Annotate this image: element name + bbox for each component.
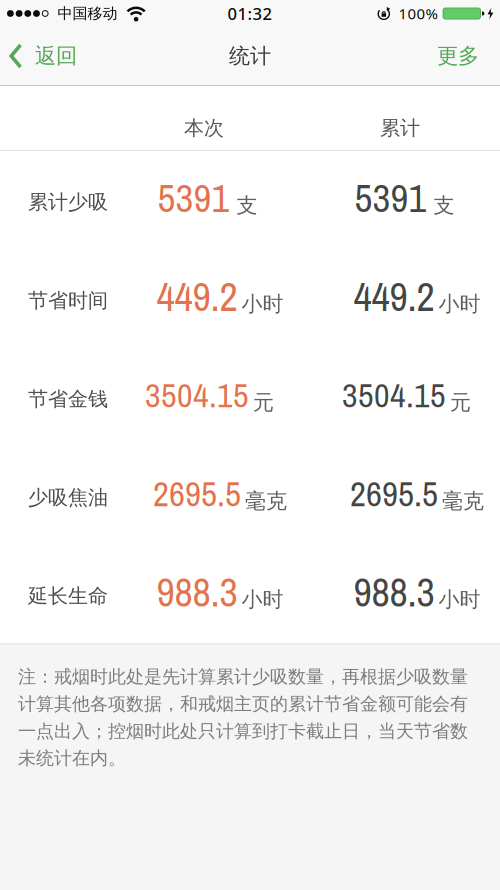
staticText: 小时 [241, 291, 283, 317]
staticText: 小时 [438, 586, 480, 613]
staticText: 988.3 [353, 565, 434, 619]
staticText: 2695.5 [350, 470, 438, 517]
staticText: 中国移动 [58, 4, 118, 23]
staticText: 支 [433, 192, 454, 219]
staticText: 3504.15 [145, 372, 249, 418]
button[interactable]: 更多 [437, 43, 500, 69]
staticText: 更多 [437, 43, 479, 69]
button[interactable]: 返回 [0, 43, 77, 69]
staticText: 988.3 [156, 565, 237, 619]
staticText: 本次 [184, 115, 224, 141]
staticText: 2695.5 [153, 470, 241, 517]
staticText: 小时 [438, 291, 480, 317]
staticText: 统计 [229, 43, 271, 69]
staticText: 449.2 [156, 270, 237, 323]
staticText: 元 [253, 389, 274, 416]
staticText: 毫克 [245, 488, 287, 514]
staticText: 累计 [380, 115, 420, 141]
staticText: 5391 [157, 172, 229, 224]
staticText: 延长生命 [28, 583, 108, 609]
staticText: 少吸焦油 [28, 485, 108, 510]
staticText: 5391 [354, 172, 426, 224]
staticText: 节省时间 [28, 288, 108, 313]
staticText: 3504.15 [342, 372, 446, 418]
staticText: 节省金钱 [28, 386, 108, 412]
staticText: 支 [236, 192, 257, 219]
staticText: 100% [399, 3, 438, 24]
staticText: 返回 [35, 43, 77, 69]
staticText: 注：戒烟时此处是先计算累计少吸数量，再根据少吸数量 计算其他各项数据，和戒烟主页… [18, 665, 468, 770]
staticText: 元 [450, 389, 471, 416]
staticText: 449.2 [353, 270, 434, 323]
staticText: 01:32 [227, 2, 272, 25]
staticText: 累计少吸 [28, 189, 108, 215]
staticText: 毫克 [442, 488, 484, 514]
staticText: 小时 [241, 586, 283, 613]
